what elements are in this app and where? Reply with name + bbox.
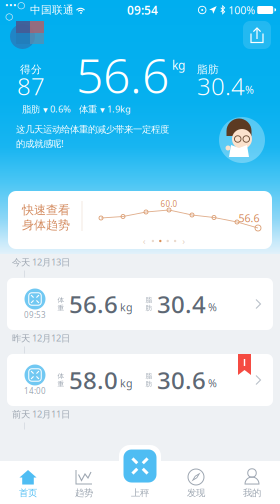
- staticText: kg: [120, 300, 133, 314]
- staticText: 58.0: [69, 364, 118, 396]
- staticText: 56.6: [76, 43, 169, 107]
- staticText: 得分: [20, 63, 42, 76]
- staticText: 56.6: [238, 211, 259, 225]
- staticText: 重: [57, 380, 64, 388]
- staticText: 30.4: [197, 70, 245, 102]
- staticText: %: [208, 376, 217, 390]
- staticText: 09:54: [127, 2, 158, 18]
- staticText: 脂肪 ▾ 0.6% 体重 ▾ 1.9kg: [22, 103, 131, 115]
- staticText: •••○○: [5, 0, 25, 21]
- button[interactable]: 上秤: [117, 443, 163, 489]
- staticText: 体: [57, 372, 64, 380]
- staticText: 56.6: [69, 288, 118, 320]
- button[interactable]: 发现: [168, 461, 224, 504]
- staticText: 这几天运动给体重的减少带来一定程度: [16, 124, 169, 135]
- staticText: ‹: [143, 235, 146, 247]
- staticText: 发现: [187, 487, 205, 499]
- staticText: 肪: [145, 304, 152, 312]
- button[interactable]: 我的: [224, 461, 280, 504]
- staticText: kg: [120, 376, 133, 390]
- staticText: ›: [182, 235, 185, 247]
- staticText: 的成就感呢!: [16, 137, 64, 150]
- button[interactable]: 60.0: [8, 191, 272, 249]
- staticText: 前天 12月11日: [12, 408, 70, 420]
- staticText: 身体趋势: [22, 218, 70, 232]
- staticText: 脂: [145, 372, 152, 380]
- staticText: 上秤: [131, 487, 149, 499]
- button[interactable]: 趋势: [56, 461, 112, 504]
- button[interactable]: 上秤: [112, 461, 168, 504]
- staticText: 我的: [243, 487, 261, 499]
- staticText: 30.6: [157, 364, 206, 396]
- staticText: 快速查看: [22, 203, 70, 217]
- staticText: 昨天 12月12日: [12, 332, 70, 344]
- staticText: 体: [57, 296, 64, 304]
- staticText: 脂肪: [197, 63, 219, 76]
- staticText: 肪: [145, 380, 152, 388]
- staticText: kg: [172, 57, 185, 73]
- staticText: 脂: [145, 296, 152, 304]
- button[interactable]: 14:00: [0, 354, 280, 406]
- staticText: %: [245, 82, 254, 97]
- staticText: 中国联通: [30, 3, 74, 16]
- staticText: 87: [17, 70, 45, 102]
- button[interactable]: 09:53: [0, 278, 280, 330]
- staticText: 14:00: [24, 386, 46, 396]
- button[interactable]: 分享: [242, 20, 272, 50]
- staticText: 30.4: [157, 288, 206, 320]
- staticText: 首页: [19, 487, 37, 499]
- staticText: %: [208, 300, 217, 314]
- staticText: 趋势: [75, 487, 93, 499]
- staticText: 60.0: [160, 199, 177, 209]
- staticText: 重: [57, 304, 64, 312]
- staticText: 今天 12月13日: [12, 256, 70, 268]
- button[interactable]: 首页: [0, 461, 56, 504]
- staticText: 100%: [228, 3, 255, 17]
- staticText: 09:53: [24, 310, 46, 320]
